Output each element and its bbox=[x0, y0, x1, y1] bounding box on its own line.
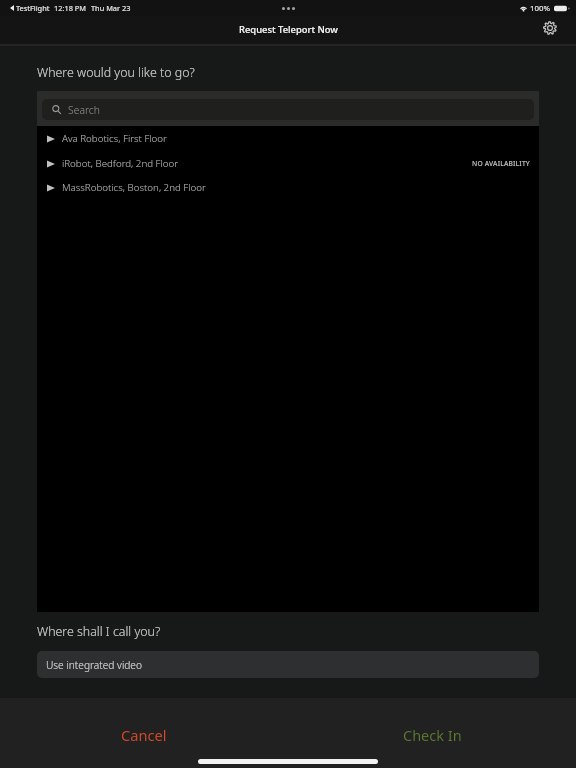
staticText: 100% bbox=[530, 3, 551, 14]
staticText: NO AVAILABILITY bbox=[472, 159, 530, 168]
button[interactable]: Ava Robotics, First Floor bbox=[37, 126, 539, 151]
staticText: Cancel bbox=[121, 725, 167, 745]
staticText: 12:18 PM bbox=[54, 3, 86, 13]
button[interactable]: Settings bbox=[539, 17, 561, 39]
staticText: Where would you like to go? bbox=[37, 64, 195, 81]
staticText: iRobot, Bedford, 2nd Floor bbox=[62, 157, 179, 170]
staticText: MassRobotics, Boston, 2nd Floor bbox=[62, 181, 206, 194]
staticText: Ava Robotics, First Floor bbox=[62, 132, 167, 145]
staticText: Use integrated video bbox=[46, 658, 142, 672]
staticText: Search bbox=[68, 103, 100, 117]
button[interactable]: Check In bbox=[288, 724, 576, 746]
staticText: Where shall I call you? bbox=[37, 623, 161, 640]
button[interactable]: Cancel bbox=[0, 724, 288, 746]
button[interactable]: MassRobotics, Boston, 2nd Floor bbox=[37, 175, 539, 200]
button[interactable]: Use integrated video bbox=[37, 651, 539, 678]
staticText: Request Teleport Now bbox=[239, 23, 338, 36]
button[interactable]: Search bbox=[42, 99, 534, 120]
staticText: Check In bbox=[403, 725, 462, 745]
staticText: Thu Mar 23 bbox=[91, 3, 131, 13]
button[interactable]: iRobot, Bedford, 2nd Floor bbox=[37, 151, 539, 176]
staticText: TestFlight bbox=[16, 3, 50, 13]
